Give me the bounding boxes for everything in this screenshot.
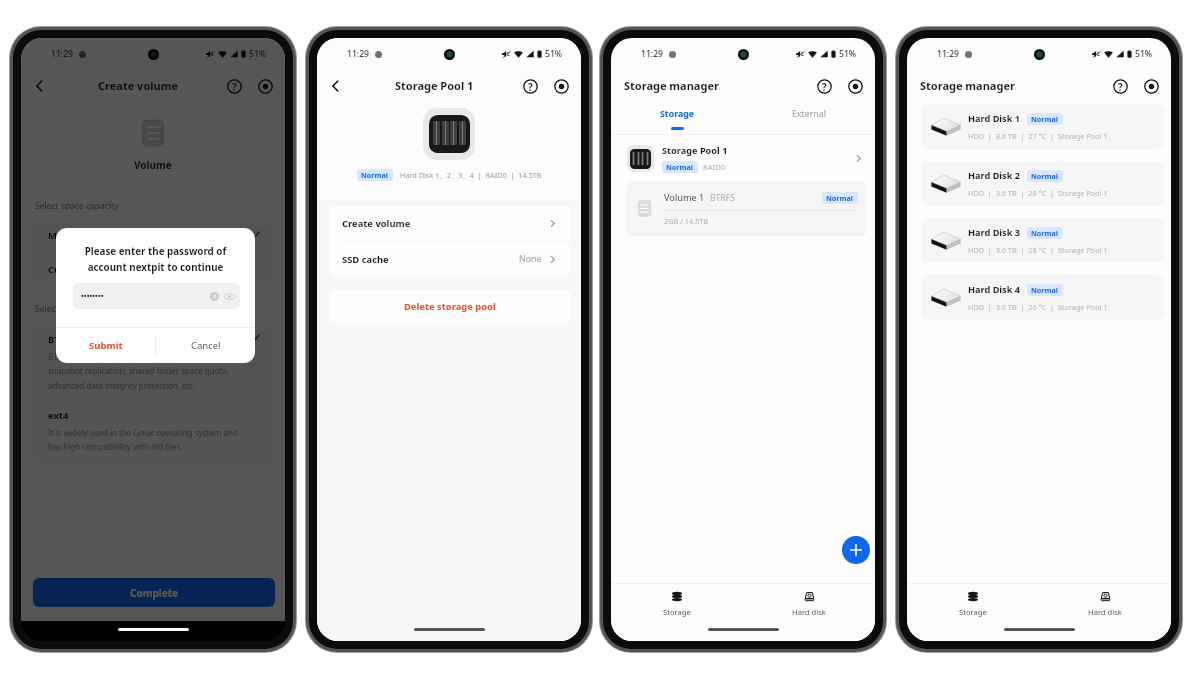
staticText: HDD | 3.6 TB | 28 °C | Storage Pool 1 — [968, 245, 1108, 255]
staticText: Normal — [1031, 228, 1059, 238]
staticText: Submit — [89, 339, 123, 352]
staticText: Create volume — [98, 78, 178, 93]
staticText: It is widely used in the Linux operating… — [48, 427, 245, 453]
button[interactable]: Submit — [56, 328, 155, 363]
button[interactable]: Account — [551, 76, 571, 96]
staticText: Normal — [361, 170, 389, 180]
staticText: 11:29 — [347, 48, 370, 60]
button[interactable]: Hard Disk 3 — [921, 218, 1164, 263]
staticText: Hard disk — [792, 607, 826, 617]
staticText: 51% — [1135, 48, 1153, 60]
staticText: RAID0 — [703, 162, 726, 172]
button[interactable]: Volume 1 — [626, 181, 867, 236]
staticText: Volume — [134, 158, 172, 172]
button[interactable]: Maximum capacity — [33, 218, 273, 252]
staticText: ? — [528, 80, 533, 93]
staticText: Normal — [1031, 171, 1059, 181]
staticText: 51% — [839, 48, 857, 60]
button[interactable]: Storage — [611, 103, 743, 134]
staticText: Maximum capacity — [48, 229, 249, 242]
staticText: 11:29 — [937, 48, 960, 60]
button[interactable]: Hard Disk 4 — [921, 275, 1164, 320]
staticText: Storage — [660, 108, 695, 120]
staticText: Normal — [1031, 114, 1059, 124]
button[interactable]: External — [743, 103, 875, 134]
staticText: HDD | 3.6 TB | 28 °C | Storage Pool 1 — [968, 188, 1108, 198]
button[interactable]: Storage Pool 1 — [611, 138, 875, 179]
staticText: None — [519, 253, 542, 265]
staticText: HDD | 3.6 TB | 26 °C | Storage Pool 1 — [968, 302, 1108, 312]
button[interactable]: Account — [845, 76, 865, 96]
button[interactable]: Create volume — [329, 206, 571, 241]
staticText: Hard Disk 2 — [968, 169, 1021, 182]
staticText: Hard Disk 3 — [968, 226, 1021, 239]
button[interactable]: Hard disk — [743, 584, 875, 621]
button[interactable]: Help — [520, 76, 540, 96]
staticText: BTRFS supports advanced features such as… — [48, 351, 243, 392]
staticText: 11:29 — [641, 48, 664, 60]
staticText: Hard Disk 1 — [968, 112, 1021, 125]
button[interactable]: Help — [814, 76, 834, 96]
staticText: Please enter the password of account nex… — [67, 245, 244, 274]
staticText: Hard Disk 1、2、3、4 | RAID0 | 14.5TB — [400, 170, 542, 180]
staticText: Storage Pool 1 — [662, 144, 728, 157]
staticText: ? — [822, 80, 827, 93]
staticText: Hard Disk 4 — [968, 283, 1021, 296]
staticText: Storage — [959, 607, 987, 617]
staticText: Select space capacity — [35, 200, 119, 212]
staticText: Complete — [130, 586, 178, 600]
staticText: Normal — [826, 193, 854, 203]
staticText: Delete storage pool — [404, 300, 496, 313]
staticText: Storage manager — [624, 78, 814, 93]
staticText: Storage manager — [920, 78, 1110, 93]
button[interactable]: Help — [1110, 76, 1130, 96]
button[interactable]: Delete storage pool — [329, 290, 571, 323]
staticText: Hard disk — [1088, 607, 1122, 617]
staticText: External — [792, 108, 826, 120]
button[interactable]: Complete — [33, 578, 275, 607]
button[interactable]: Back — [324, 74, 348, 98]
staticText: 51% — [545, 48, 563, 60]
staticText: ? — [1118, 80, 1123, 93]
staticText: Create volume — [342, 217, 546, 230]
staticText: Normal — [666, 162, 694, 172]
button[interactable]: Hard Disk 1 — [921, 104, 1164, 149]
staticText: Volume 1 — [664, 191, 705, 204]
button[interactable]: Account — [1141, 76, 1161, 96]
staticText: ? — [232, 80, 237, 93]
staticText: •••••••• — [81, 291, 210, 301]
staticText: 51% — [249, 48, 267, 60]
button[interactable]: Account — [255, 76, 275, 96]
button[interactable]: Storage — [907, 584, 1039, 621]
staticText: BTRFS — [710, 192, 735, 204]
staticText: ext4 — [48, 409, 69, 422]
staticText: Storage — [663, 607, 691, 617]
staticText: 2GB / 14.5TB — [664, 216, 709, 226]
button[interactable]: Back — [28, 74, 52, 98]
staticText: Cancel — [191, 339, 221, 352]
button[interactable]: Custom capacity — [33, 252, 273, 286]
staticText: Storage Pool 1 — [395, 78, 474, 93]
button[interactable]: Help — [224, 76, 244, 96]
staticText: Select file system — [35, 303, 104, 315]
staticText: BTRFS — [48, 333, 77, 346]
staticText: Normal — [1031, 285, 1059, 295]
staticText: HDD | 3.6 TB | 27 °C | Storage Pool 1 — [968, 131, 1108, 141]
button[interactable]: Add — [842, 536, 870, 564]
button[interactable]: Hard Disk 2 — [921, 161, 1164, 206]
button[interactable]: Hard disk — [1039, 584, 1171, 621]
staticText: Custom capacity — [48, 263, 260, 276]
button[interactable]: Storage — [611, 584, 743, 621]
button[interactable]: SSD cache — [329, 242, 571, 276]
staticText: SSD cache — [342, 253, 519, 266]
button[interactable]: Cancel — [156, 328, 255, 363]
staticText: 11:29 — [51, 48, 74, 60]
